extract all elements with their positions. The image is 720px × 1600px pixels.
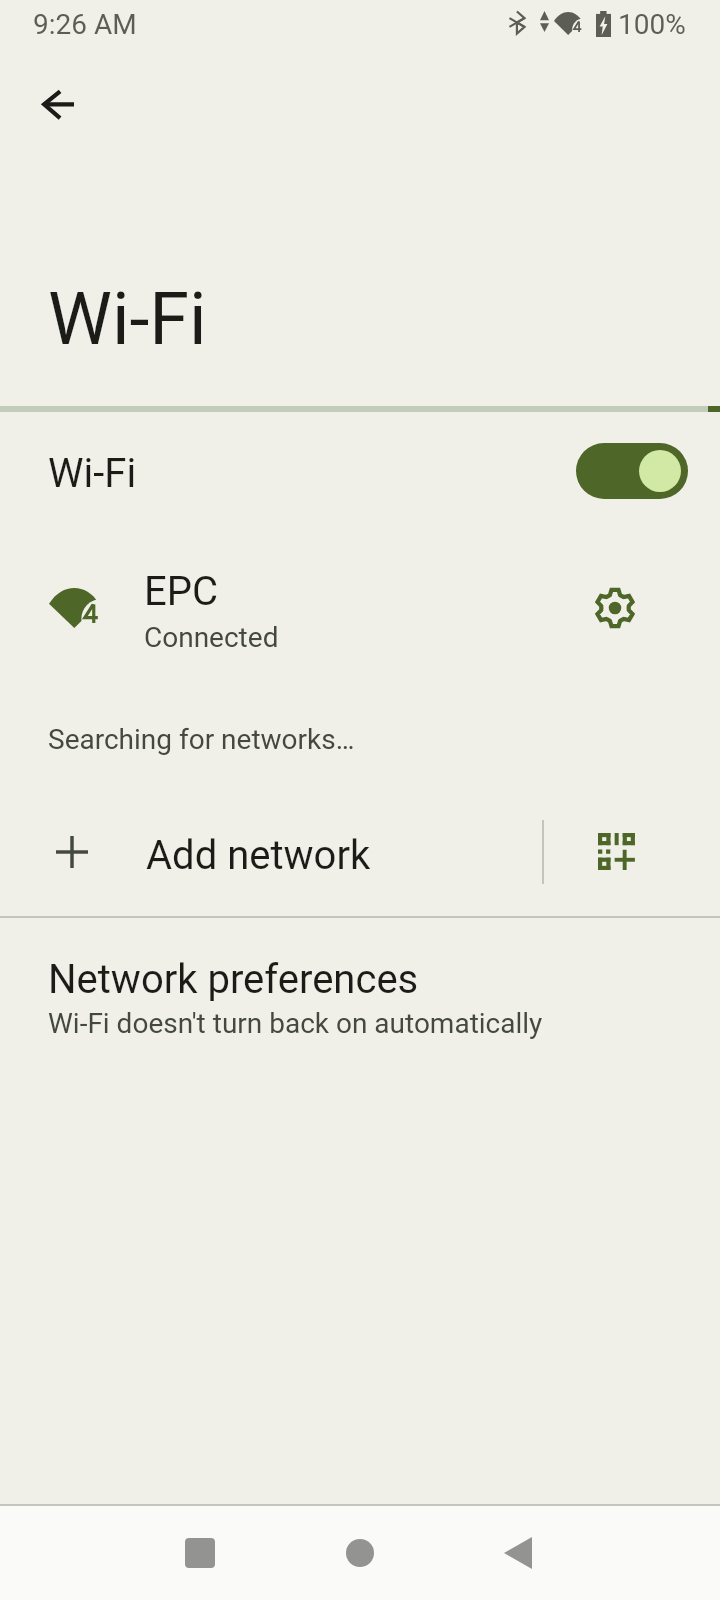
staticText: EPC (144, 568, 219, 615)
button[interactable]: Network details settings (567, 560, 663, 656)
button[interactable]: Home (312, 1506, 408, 1600)
button[interactable]: Navigate up (6, 52, 110, 156)
staticText: Add network (146, 832, 371, 879)
button[interactable]: Network preferences (0, 956, 720, 1048)
staticText: 9:26 AM (33, 8, 137, 41)
button[interactable]: Add network (0, 819, 720, 891)
staticText: Wi-Fi doesn't turn back on automatically (48, 1007, 543, 1040)
staticText: Wi-Fi (48, 450, 137, 497)
button[interactable]: EPC (0, 554, 720, 666)
button[interactable]: Wi-Fi (0, 425, 720, 521)
button[interactable]: Recent apps (152, 1506, 248, 1600)
staticText: Wi-Fi (48, 277, 207, 362)
staticText: Network preferences (48, 956, 419, 1003)
staticText: Searching for networks… (48, 723, 355, 756)
button[interactable]: Back (470, 1506, 566, 1600)
staticText: 100% (618, 8, 686, 41)
button[interactable]: Add network using QR code (544, 795, 688, 907)
staticText: Connected (144, 621, 279, 654)
